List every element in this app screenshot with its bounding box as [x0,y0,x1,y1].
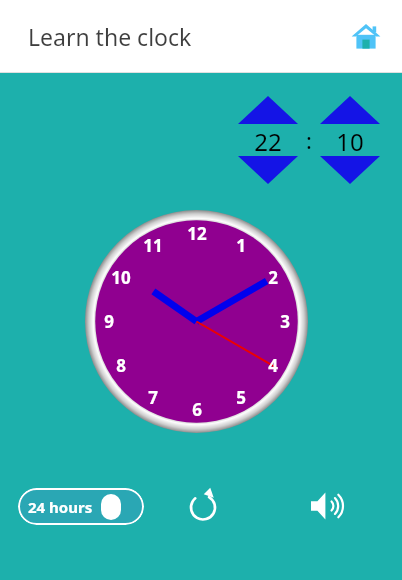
staticText: 22 [254,125,282,155]
staticText: Learn the clock [28,21,192,52]
staticText: 4 [268,354,278,377]
button[interactable]: Sound [302,481,352,531]
button[interactable]: 24 hours [18,488,144,525]
button[interactable]: Decrease [238,155,298,185]
staticText: 7 [148,386,158,409]
staticText: 10 [336,125,364,155]
staticText: 9 [104,310,114,333]
staticText: 1 [236,234,246,257]
button[interactable]: Clock [85,210,308,433]
button[interactable]: Reset [182,485,224,527]
staticText: 5 [236,386,246,409]
staticText: 12 [187,222,207,245]
button[interactable]: Decrease [320,155,380,185]
button[interactable]: Home [346,16,386,56]
staticText: 6 [192,398,202,421]
staticText: 8 [116,354,126,377]
staticText: 3 [280,310,290,333]
button[interactable]: Increase [238,95,298,125]
staticText: 24 hours [28,497,93,517]
button[interactable]: Increase [320,95,380,125]
staticText: 11 [143,234,163,257]
staticText: : [306,125,312,155]
staticText: 10 [111,266,131,289]
staticText: 2 [268,266,278,289]
